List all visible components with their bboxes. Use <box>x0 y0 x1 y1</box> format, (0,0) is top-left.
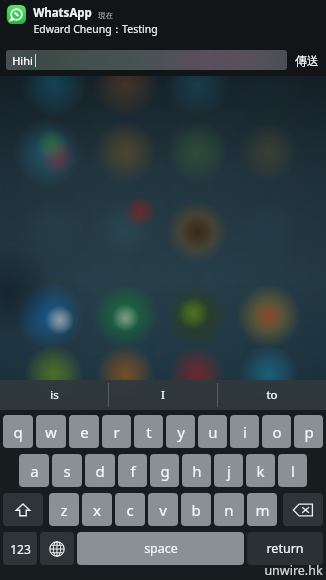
button[interactable]: o <box>262 415 291 448</box>
button[interactable]: h <box>182 454 211 487</box>
button[interactable]: e <box>69 415 99 448</box>
staticText: u <box>208 422 218 442</box>
button[interactable]: b <box>181 493 211 526</box>
staticText: 現在 <box>98 11 113 20</box>
button[interactable]: t <box>134 415 163 448</box>
staticText: o <box>272 422 282 442</box>
staticText: z <box>60 500 68 520</box>
staticText: t <box>146 422 152 442</box>
button[interactable]: return <box>247 532 323 565</box>
button[interactable]: k <box>246 454 275 487</box>
button[interactable]: 123 <box>3 532 37 565</box>
button[interactable]: j <box>214 454 243 487</box>
staticText: l <box>291 461 295 481</box>
button[interactable]: Switch keyboard language <box>40 532 74 565</box>
staticText: 123 <box>10 541 31 557</box>
staticText: Edward Cheung：Testing <box>33 22 158 36</box>
staticText: a <box>30 461 39 481</box>
staticText: 傳送 <box>295 53 319 68</box>
staticText: space <box>144 540 178 557</box>
button[interactable]: Shift <box>3 493 43 526</box>
staticText: is <box>50 387 59 403</box>
button[interactable]: i <box>230 415 259 448</box>
staticText: Hihi <box>12 53 33 68</box>
staticText: r <box>113 422 120 442</box>
button[interactable]: f <box>118 454 147 487</box>
button[interactable]: c <box>115 493 145 526</box>
button[interactable]: d <box>85 454 115 487</box>
staticText: WhatsApp <box>33 5 92 21</box>
button[interactable]: l <box>278 454 307 487</box>
button[interactable]: y <box>166 415 195 448</box>
button[interactable]: p <box>294 415 323 448</box>
button[interactable]: z <box>49 493 79 526</box>
staticText: unwire.hk <box>264 562 323 579</box>
staticText: g <box>160 461 170 481</box>
staticText: e <box>80 422 89 442</box>
button[interactable]: v <box>148 493 178 526</box>
button[interactable]: is <box>0 380 108 410</box>
button[interactable]: to <box>218 380 326 410</box>
button[interactable]: n <box>214 493 244 526</box>
button[interactable]: r <box>102 415 131 448</box>
button[interactable]: Hihi <box>6 50 287 70</box>
staticText: h <box>192 461 202 481</box>
button[interactable]: space <box>77 532 244 565</box>
staticText: x <box>93 500 101 520</box>
staticText: s <box>63 461 71 481</box>
staticText: i <box>243 422 247 442</box>
staticText: j <box>227 461 231 481</box>
button[interactable]: x <box>82 493 112 526</box>
staticText: to <box>266 387 278 403</box>
staticText: y <box>177 422 185 442</box>
staticText: k <box>256 461 265 481</box>
button[interactable]: 傳送 <box>293 51 321 70</box>
button[interactable]: Backspace <box>283 493 323 526</box>
button[interactable]: q <box>3 415 33 448</box>
button[interactable]: I <box>109 380 217 410</box>
button[interactable]: m <box>247 493 277 526</box>
staticText: f <box>130 461 136 481</box>
staticText: q <box>13 422 23 442</box>
staticText: c <box>126 500 134 520</box>
button[interactable]: a <box>19 454 49 487</box>
staticText: d <box>95 461 105 481</box>
button[interactable]: s <box>52 454 82 487</box>
button[interactable]: u <box>198 415 227 448</box>
staticText: b <box>191 500 201 520</box>
staticText: n <box>224 500 234 520</box>
button[interactable]: w <box>36 415 66 448</box>
staticText: v <box>159 500 167 520</box>
staticText: I <box>161 387 165 403</box>
staticText: return <box>266 540 304 557</box>
other: WhatsApp <box>7 5 26 24</box>
button[interactable]: g <box>150 454 179 487</box>
staticText: m <box>255 500 270 520</box>
staticText: w <box>45 422 57 442</box>
staticText: p <box>304 422 314 442</box>
